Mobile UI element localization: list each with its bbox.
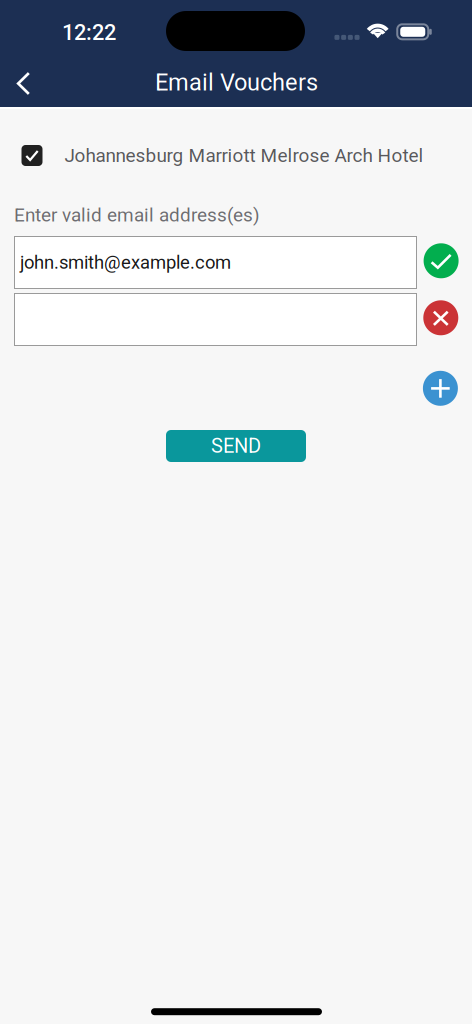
staticText: 12:22 bbox=[62, 20, 116, 45]
button[interactable]: Johannesburg Marriott Melrose Arch Hotel bbox=[0, 131, 472, 179]
button[interactable]: Add email address bbox=[423, 371, 458, 406]
button[interactable]: Invalid email address bbox=[423, 300, 458, 335]
staticText: john.smith@example.com bbox=[20, 252, 231, 273]
staticText: Enter valid email address(es) bbox=[14, 204, 260, 226]
button[interactable]: Back bbox=[1, 61, 45, 105]
button[interactable]: SEND bbox=[166, 430, 306, 462]
staticText: Email Vouchers bbox=[155, 69, 318, 96]
button[interactable]: Valid email address bbox=[424, 243, 459, 278]
staticText: Johannesburg Marriott Melrose Arch Hotel bbox=[64, 144, 423, 167]
staticText: SEND bbox=[211, 434, 261, 458]
